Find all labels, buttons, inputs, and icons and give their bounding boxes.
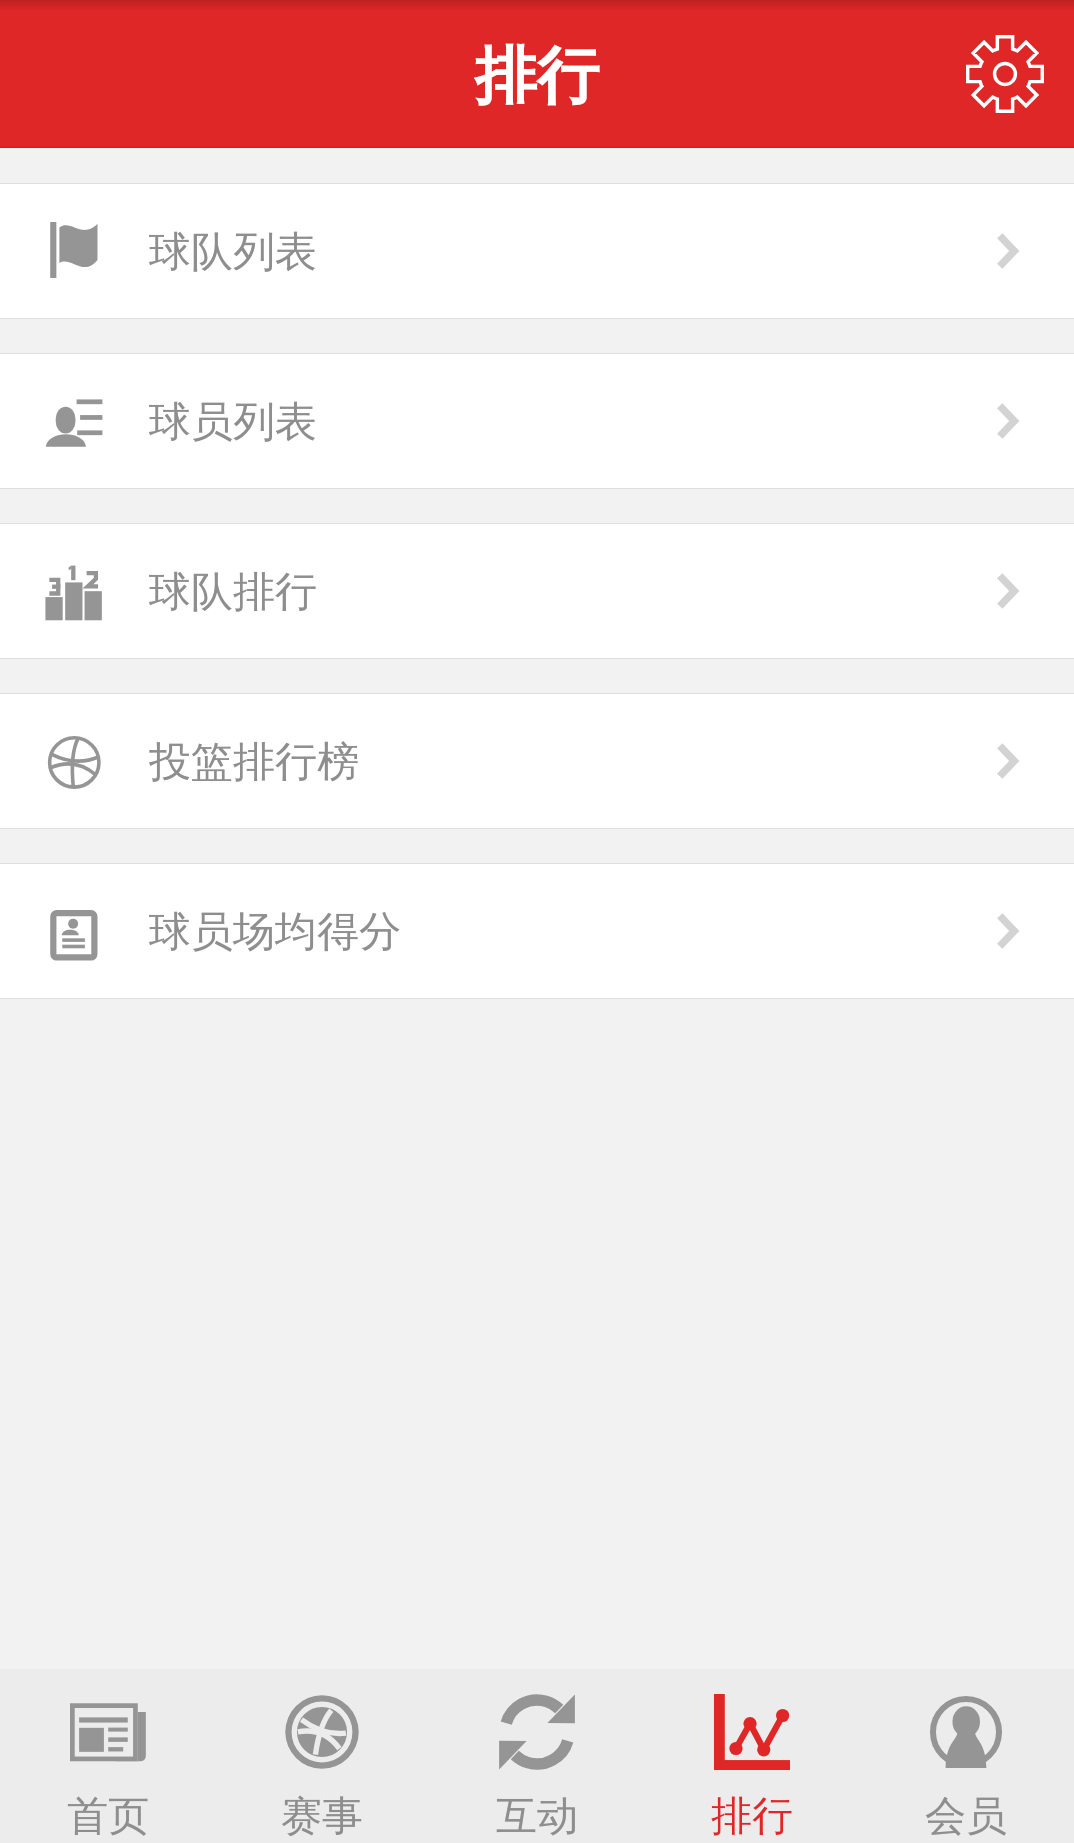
button[interactable]: 球队排行 (0, 524, 1074, 658)
button[interactable]: Settings (955, 24, 1055, 124)
staticText: 投篮排行榜 (149, 736, 359, 789)
staticText: 排行 (475, 37, 599, 115)
staticText: 球员场均得分 (149, 906, 401, 959)
staticText: 赛事 (281, 1791, 363, 1843)
button[interactable]: 赛事 (215, 1669, 429, 1843)
staticText: 互动 (496, 1791, 578, 1843)
staticText: 首页 (67, 1791, 149, 1843)
staticText: 球队列表 (149, 226, 317, 279)
button[interactable]: 排行 (645, 1669, 859, 1843)
staticText: 会员 (925, 1791, 1007, 1843)
staticText: 排行 (711, 1791, 793, 1843)
button[interactable]: 球队列表 (0, 184, 1074, 318)
staticText: 球员列表 (149, 396, 317, 449)
button[interactable]: 球员列表 (0, 354, 1074, 488)
button[interactable]: 投篮排行榜 (0, 694, 1074, 828)
button[interactable]: 会员 (859, 1669, 1073, 1843)
button[interactable]: 首页 (1, 1669, 215, 1843)
button[interactable]: 互动 (430, 1669, 644, 1843)
staticText: 球队排行 (149, 566, 317, 619)
button[interactable]: 球员场均得分 (0, 864, 1074, 998)
